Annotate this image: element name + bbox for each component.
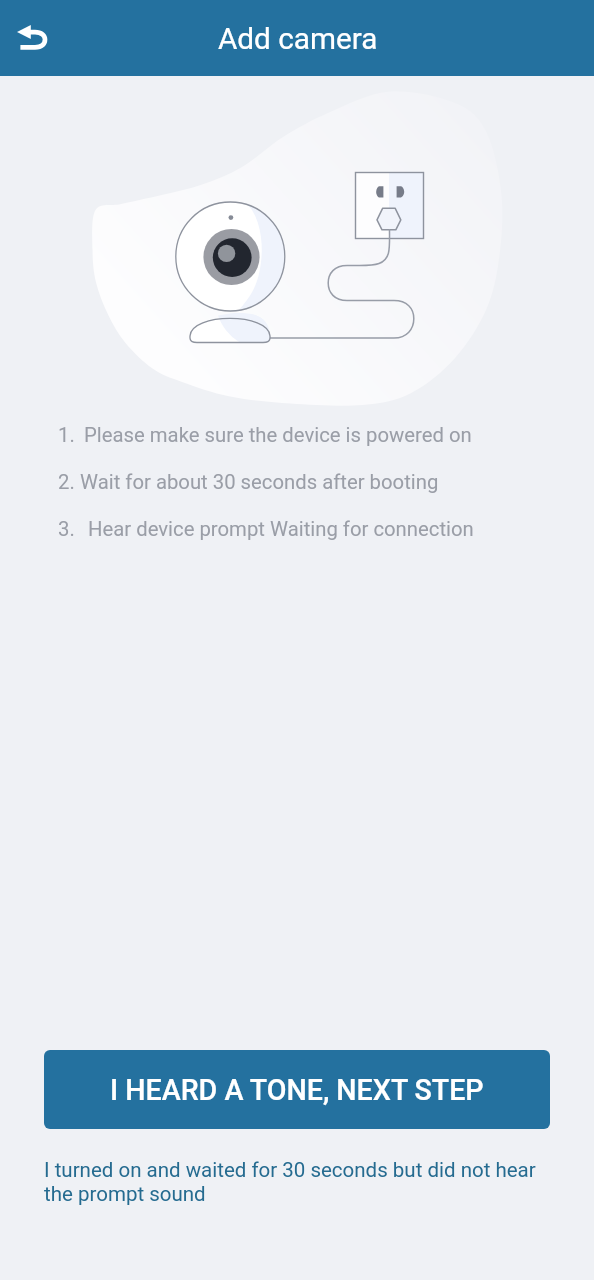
button[interactable]: I HEARD A TONE, NEXT STEP (44, 1050, 550, 1129)
staticText: Add camera (218, 21, 378, 56)
staticText: Wait for about 30 seconds after booting (80, 470, 439, 494)
staticText: Please make sure the device is powered o… (84, 423, 472, 447)
button[interactable]: Back (0, 4, 68, 72)
button[interactable]: I turned on and waited for 30 seconds bu… (44, 1158, 544, 1206)
staticText: I HEARD A TONE, NEXT STEP (110, 1073, 484, 1107)
staticText: 2. (58, 470, 75, 494)
staticText: 1. (58, 423, 75, 447)
staticText: 3. (58, 517, 75, 541)
staticText: I turned on and waited for 30 seconds bu… (44, 1158, 544, 1206)
staticText: Hear device prompt Waiting for connectio… (88, 517, 474, 541)
